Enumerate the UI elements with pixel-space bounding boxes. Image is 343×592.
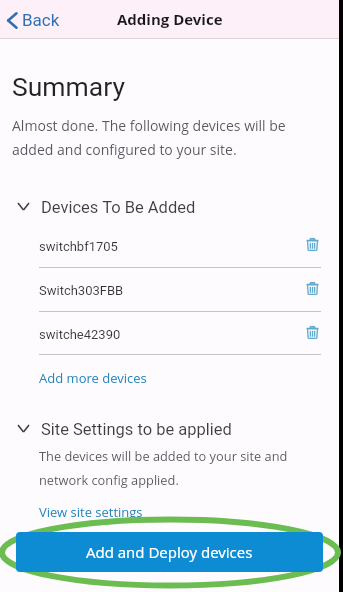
button[interactable]: Add more devices: [39, 369, 147, 387]
button[interactable]: Switch303FBB: [0, 280, 339, 300]
button[interactable]: Delete Switch303FBB: [301, 278, 323, 298]
button[interactable]: View site settings: [39, 503, 143, 521]
staticText: Add and Deploy devices: [86, 542, 253, 562]
staticText: switche42390: [39, 327, 121, 342]
button[interactable]: Add and Deploy devices: [16, 532, 323, 572]
button[interactable]: Site Settings to be applied: [0, 417, 339, 441]
staticText: View site settings: [39, 503, 143, 521]
staticText: Almost done. The following devices will …: [12, 116, 286, 159]
staticText: Add more devices: [39, 369, 147, 387]
staticText: Back: [22, 10, 60, 30]
button[interactable]: Delete switchbf1705: [301, 234, 323, 254]
staticText: Adding Device: [117, 9, 223, 29]
button[interactable]: Back: [3, 6, 64, 34]
button[interactable]: Delete switche42390: [301, 322, 323, 342]
button[interactable]: switche42390: [0, 324, 339, 344]
staticText: The devices will be added to your site a…: [39, 447, 288, 489]
button[interactable]: switchbf1705: [0, 236, 339, 256]
staticText: Summary: [12, 71, 125, 102]
staticText: Site Settings to be applied: [41, 420, 232, 439]
staticText: Switch303FBB: [39, 283, 124, 298]
staticText: switchbf1705: [39, 239, 118, 254]
button[interactable]: Devices To Be Added: [0, 195, 339, 219]
staticText: Devices To Be Added: [41, 198, 196, 217]
